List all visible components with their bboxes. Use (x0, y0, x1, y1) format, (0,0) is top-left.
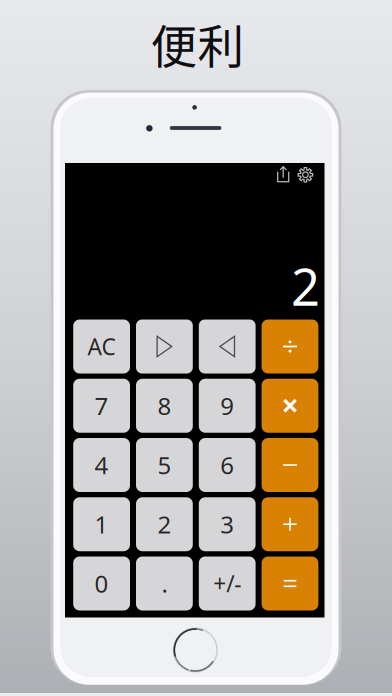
button[interactable]: 7 (73, 379, 130, 433)
button[interactable]: 9 (199, 379, 256, 433)
staticText: 2 (157, 508, 171, 540)
staticText: AC (88, 331, 116, 361)
button[interactable]: 6 (199, 438, 256, 492)
staticText: . (161, 568, 167, 599)
button[interactable]: 4 (73, 438, 130, 492)
button[interactable]: Divide (262, 319, 318, 373)
staticText: 5 (157, 449, 171, 481)
button[interactable]: Equals (262, 556, 318, 610)
staticText: 1 (95, 508, 109, 540)
button[interactable]: 3 (199, 497, 256, 551)
button[interactable]: . (136, 556, 193, 610)
staticText: 0 (95, 568, 109, 599)
button[interactable]: Previous (199, 319, 256, 373)
staticText: +/- (213, 568, 241, 598)
button[interactable]: 5 (136, 438, 193, 492)
staticText: 8 (157, 390, 171, 422)
button[interactable]: Multiply (262, 379, 318, 433)
staticText: 9 (220, 390, 234, 422)
button[interactable]: Plus (262, 497, 318, 551)
staticText: 6 (220, 449, 234, 481)
staticText: 便利 (150, 9, 244, 77)
staticText: 2 (291, 252, 320, 320)
staticText: 4 (95, 449, 109, 481)
button[interactable]: Settings (297, 167, 313, 183)
button[interactable]: Minus (262, 438, 318, 492)
button[interactable]: +/- (199, 556, 256, 610)
button[interactable]: 2 (136, 497, 193, 551)
button[interactable]: Next (136, 319, 193, 373)
button[interactable]: 0 (73, 556, 130, 610)
staticText: 3 (220, 508, 234, 540)
button[interactable]: Share (277, 166, 290, 183)
staticText: 7 (95, 390, 109, 422)
button[interactable]: 8 (136, 379, 193, 433)
button[interactable]: 1 (73, 497, 130, 551)
button[interactable]: AC (73, 319, 130, 373)
